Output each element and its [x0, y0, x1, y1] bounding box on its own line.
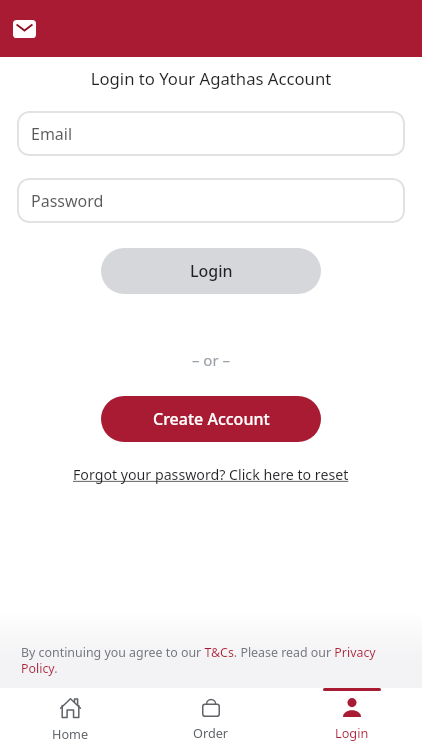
- button[interactable]: Password: [17, 178, 405, 223]
- button[interactable]: Create Account: [101, 396, 321, 442]
- staticText: Order: [193, 724, 229, 741]
- staticText: By continuing you agree to our T&Cs. Ple…: [21, 644, 385, 677]
- staticText: Login: [190, 260, 233, 282]
- staticText: Email: [31, 123, 73, 145]
- button[interactable]: Login: [281, 688, 422, 750]
- staticText: Login: [335, 724, 369, 741]
- staticText: Create Account: [153, 408, 270, 430]
- button[interactable]: Forgot your password? Click here to rese…: [67, 463, 355, 486]
- staticText: Password: [31, 190, 104, 212]
- button[interactable]: Order: [140, 688, 281, 750]
- button[interactable]: Messages: [9, 16, 39, 41]
- button[interactable]: Home: [0, 688, 140, 750]
- button[interactable]: Login: [101, 248, 321, 294]
- staticText: – or –: [0, 350, 422, 370]
- staticText: Login to Your Agathas Account: [0, 67, 422, 90]
- staticText: Home: [52, 725, 89, 742]
- staticText: Forgot your password? Click here to rese…: [73, 465, 349, 484]
- button[interactable]: Email: [17, 111, 405, 156]
